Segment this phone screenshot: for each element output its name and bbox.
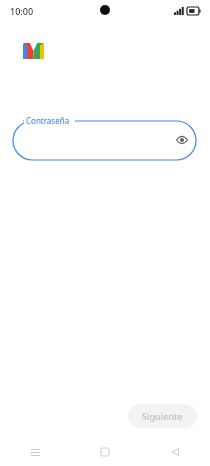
- button[interactable]: Inicio: [70, 438, 140, 466]
- button[interactable]: Recientes: [0, 438, 70, 466]
- button[interactable]: Siguiente: [128, 404, 197, 428]
- button[interactable]: Atrás: [140, 438, 210, 466]
- staticText: 10:00: [10, 5, 34, 17]
- button[interactable]: Mostrar contraseña: [13, 114, 196, 160]
- staticText: Contraseña: [26, 115, 70, 126]
- staticText: Siguiente: [142, 410, 183, 422]
- button[interactable]: Mostrar contraseña: [173, 131, 191, 149]
